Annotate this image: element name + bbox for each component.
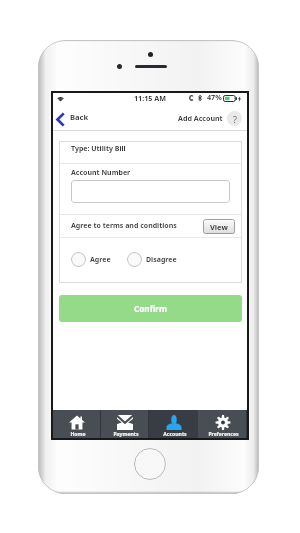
staticText: Payments <box>113 431 139 438</box>
button[interactable]: Payments <box>101 410 149 438</box>
staticText: 47% <box>207 92 222 102</box>
button[interactable]: View <box>203 219 235 234</box>
button[interactable]: Home button <box>134 448 166 480</box>
staticText: Type: Utility Bill <box>71 144 126 154</box>
staticText: ? <box>233 113 237 125</box>
button[interactable]: Type: Utility Bill <box>59 141 242 163</box>
staticText: Back <box>70 112 89 122</box>
staticText: Home <box>70 431 86 438</box>
button[interactable]: Home <box>53 410 101 438</box>
button[interactable]: Confirm <box>59 295 242 322</box>
button[interactable]: Disagree <box>127 252 177 267</box>
button[interactable]: Accounts <box>149 410 198 438</box>
button[interactable]: Back <box>54 110 91 130</box>
button[interactable]: Help <box>227 111 242 126</box>
staticText: Confirm <box>134 303 167 314</box>
staticText: Agree <box>90 255 111 265</box>
staticText: Preferences <box>208 431 239 438</box>
button[interactable]: Preferences <box>198 410 247 438</box>
button[interactable]: Account Number input <box>71 180 230 203</box>
staticText: Disagree <box>146 255 177 265</box>
staticText: 11:15 AM <box>134 93 167 103</box>
staticText: Agree to terms and conditions <box>71 221 177 231</box>
button[interactable]: Agree <box>71 252 111 267</box>
button[interactable]: Add Account <box>175 109 226 127</box>
staticText: Account Number <box>71 168 131 178</box>
staticText: View <box>210 222 228 232</box>
staticText: Accounts <box>163 431 187 438</box>
